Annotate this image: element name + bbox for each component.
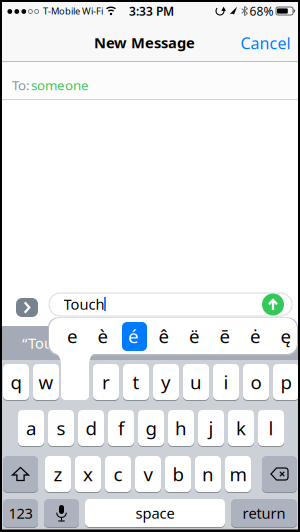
staticText: z	[53, 462, 62, 486]
button[interactable]: t	[123, 363, 149, 400]
staticText: p	[280, 370, 291, 394]
staticText: m	[229, 462, 246, 486]
button[interactable]: e	[59, 321, 85, 351]
button[interactable]: f	[108, 409, 134, 446]
staticText: w	[38, 370, 53, 394]
staticText: q	[10, 370, 21, 394]
button[interactable]: App drawer	[16, 298, 38, 317]
button[interactable]: d	[78, 409, 104, 446]
staticText: t	[132, 370, 139, 394]
button[interactable]: z	[45, 455, 71, 492]
button[interactable]: Delete	[262, 455, 297, 492]
button[interactable]: a	[18, 409, 44, 446]
staticText: h	[175, 416, 187, 440]
staticText: l	[268, 416, 273, 440]
staticText: r	[102, 370, 110, 394]
button[interactable]: ė	[242, 321, 268, 351]
button[interactable]: ê	[151, 321, 177, 351]
staticText: c	[113, 462, 122, 486]
button[interactable]: return	[231, 498, 297, 527]
staticText: i	[223, 370, 228, 394]
staticText: n	[202, 462, 214, 486]
button[interactable]: ē	[212, 321, 238, 351]
button[interactable]: è	[90, 321, 116, 351]
staticText: T-Mobile Wi-Fi	[43, 5, 103, 17]
button[interactable]: r	[93, 363, 119, 400]
button[interactable]: h	[168, 409, 194, 446]
button[interactable]: ę	[273, 321, 299, 351]
button[interactable]: y	[153, 363, 179, 400]
button[interactable]: v	[135, 455, 161, 492]
button[interactable]: n	[195, 455, 221, 492]
button[interactable]: k	[228, 409, 254, 446]
button[interactable]: s	[48, 409, 74, 446]
staticText: ė	[250, 324, 261, 348]
staticText: u	[190, 370, 202, 394]
button[interactable]: x	[75, 455, 101, 492]
staticText: ę	[280, 324, 291, 348]
staticText: Touch	[63, 294, 104, 314]
staticText: f	[118, 416, 124, 440]
staticText: 3:33 PM	[129, 3, 174, 19]
staticText: g	[145, 416, 156, 440]
button[interactable]: 123	[3, 498, 38, 527]
staticText: space	[135, 503, 174, 523]
staticText: ë	[189, 324, 200, 348]
button[interactable]: g	[138, 409, 164, 446]
staticText: v	[143, 462, 152, 486]
button[interactable]: Send	[262, 293, 284, 315]
staticText: b	[172, 462, 183, 486]
button[interactable]: o	[243, 363, 269, 400]
button[interactable]: p	[273, 363, 299, 400]
button[interactable]: space	[85, 498, 225, 527]
button[interactable]: l	[258, 409, 284, 446]
staticText: someone	[31, 76, 89, 94]
staticText: s	[56, 416, 65, 440]
button[interactable]: é	[120, 321, 146, 351]
staticText: è	[97, 324, 108, 348]
staticText: j	[208, 416, 213, 440]
staticText: Cancel	[240, 32, 290, 54]
button[interactable]: u	[183, 363, 209, 400]
staticText: y	[161, 370, 171, 394]
staticText: k	[236, 416, 246, 440]
staticText: “Touch”	[22, 333, 74, 353]
button[interactable]: ë	[181, 321, 207, 351]
staticText: é	[128, 324, 139, 348]
staticText: x	[83, 462, 93, 486]
button[interactable]: Dictate	[44, 498, 79, 527]
staticText: 68%	[249, 3, 273, 19]
staticText: New Message	[94, 33, 195, 52]
button[interactable]: w	[33, 363, 59, 400]
staticText: To:	[12, 76, 30, 94]
staticText: d	[85, 416, 96, 440]
button[interactable]: b	[165, 455, 191, 492]
button[interactable]: q	[3, 363, 29, 400]
button[interactable]: i	[213, 363, 239, 400]
button[interactable]: c	[105, 455, 131, 492]
button[interactable]: Shift	[3, 455, 38, 492]
button[interactable]: j	[198, 409, 224, 446]
staticText: 123	[8, 503, 32, 523]
staticText: return	[242, 503, 285, 523]
staticText: o	[250, 370, 261, 394]
staticText: a	[26, 416, 36, 440]
staticText: ê	[158, 324, 169, 348]
staticText: e	[67, 324, 78, 348]
button[interactable]: Cancel	[240, 32, 290, 54]
button[interactable]: m	[225, 455, 251, 492]
staticText: ē	[219, 324, 230, 348]
